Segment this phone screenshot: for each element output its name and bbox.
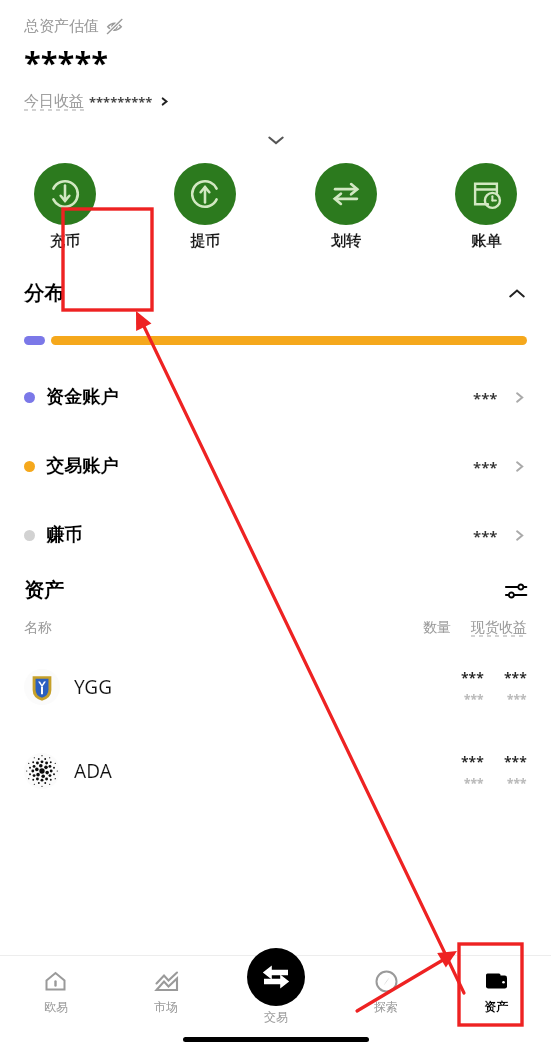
button[interactable]: 账单 (441, 163, 531, 251)
button[interactable]: 欧易 (0, 956, 111, 1026)
button[interactable]: 探索 (331, 956, 441, 1026)
staticText: ********* (89, 93, 153, 111)
staticText: *** (461, 668, 484, 687)
staticText: 数量 (423, 619, 451, 637)
staticText: *** (473, 388, 498, 408)
staticText: 总资产估值 (24, 17, 99, 36)
staticText: 名称 (24, 619, 52, 637)
staticText: 资产 (24, 578, 64, 603)
other: Hide balance (106, 18, 123, 35)
staticText: ADA (74, 758, 112, 784)
staticText: 交易账户 (46, 455, 118, 478)
button[interactable]: Trade (221, 948, 331, 1024)
staticText: 探索 (374, 999, 398, 1014)
button[interactable]: Collapse (264, 128, 288, 152)
staticText: 资产 (484, 999, 508, 1014)
button[interactable]: 赚币 (24, 501, 527, 570)
staticText: 账单 (471, 232, 501, 251)
staticText: 赚币 (46, 524, 82, 547)
button[interactable]: ADA (24, 729, 527, 813)
button[interactable]: 交易账户 (24, 432, 527, 501)
staticText: 划转 (331, 232, 361, 251)
button[interactable]: 市场 (111, 956, 221, 1026)
button[interactable]: 总资产估值 (24, 17, 123, 36)
button[interactable]: 资产 (441, 956, 551, 1026)
staticText: ***** (24, 41, 109, 83)
staticText: *** (464, 775, 484, 791)
staticText: 充币 (50, 232, 80, 251)
staticText: *** (507, 691, 527, 707)
staticText: *** (473, 526, 498, 546)
staticText: YGG (74, 674, 113, 700)
staticText: 欧易 (44, 999, 68, 1014)
button[interactable]: Filter assets (505, 580, 527, 602)
staticText: 交易 (264, 1009, 288, 1024)
staticText: 提币 (190, 232, 220, 251)
staticText: *** (464, 691, 484, 707)
button[interactable]: 划转 (301, 163, 391, 251)
staticText: *** (473, 457, 498, 477)
staticText: *** (507, 775, 527, 791)
staticText: 资金账户 (46, 386, 118, 409)
button[interactable]: 充币 (20, 163, 110, 251)
staticText: 今日收益 (24, 92, 84, 111)
staticText: *** (461, 752, 484, 771)
staticText: 分布 (24, 281, 64, 306)
staticText: 现货收益 (471, 619, 527, 637)
button[interactable]: 提币 (160, 163, 250, 251)
staticText: 市场 (154, 999, 178, 1014)
staticText: *** (504, 752, 527, 771)
button[interactable]: YGG (24, 645, 527, 729)
button[interactable]: 分布 (24, 281, 527, 306)
button[interactable]: 资金账户 (24, 363, 527, 432)
staticText: *** (504, 668, 527, 687)
button[interactable]: 今日收益 (24, 92, 170, 111)
